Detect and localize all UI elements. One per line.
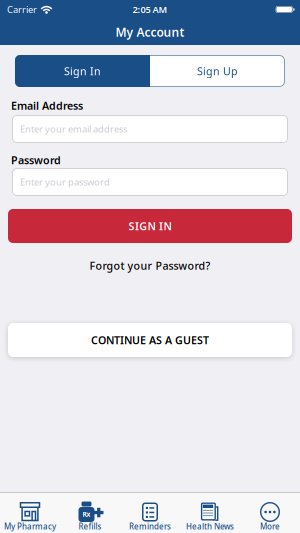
staticText: Health News [186, 521, 234, 532]
button[interactable]: More [240, 492, 300, 533]
staticText: My Pharmacy [4, 521, 56, 532]
staticText: Sign In [64, 64, 101, 78]
staticText: Carrier [7, 3, 37, 16]
staticText: SIGN IN [129, 219, 171, 233]
button[interactable]: SIGN IN [8, 209, 292, 243]
button[interactable]: Forgot your Password? [89, 258, 210, 273]
button[interactable]: Health News [180, 492, 240, 533]
staticText: Forgot your Password? [89, 258, 210, 273]
staticText: 2:05 AM [132, 3, 167, 16]
staticText: Reminders [129, 521, 171, 532]
staticText: Rx [82, 510, 90, 519]
staticText: More [260, 521, 280, 532]
button[interactable]: CONTINUE AS A GUEST [8, 323, 292, 357]
staticText: My Account [115, 24, 184, 40]
button[interactable]: Enter your email address [12, 115, 288, 143]
button[interactable]: Enter your password [12, 168, 288, 196]
button[interactable]: My Pharmacy [0, 492, 60, 533]
staticText: Password [11, 153, 61, 167]
button[interactable]: Sign In [15, 55, 150, 87]
button[interactable]: Rx [60, 492, 120, 533]
staticText: Sign Up [197, 64, 238, 78]
staticText: Enter your email address [20, 123, 127, 135]
button[interactable]: Sign Up [150, 55, 285, 87]
staticText: CONTINUE AS A GUEST [91, 333, 209, 347]
staticText: Enter your password [20, 176, 110, 188]
button[interactable]: Reminders [120, 492, 180, 533]
staticText: Refills [78, 521, 101, 532]
staticText: Email Address [11, 98, 83, 113]
